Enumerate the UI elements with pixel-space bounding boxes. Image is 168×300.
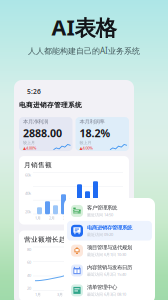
staticText: 最近访问 6月2日 15:40 bbox=[87, 272, 126, 277]
staticText: 5月 bbox=[79, 292, 85, 297]
staticText: 20k bbox=[25, 209, 31, 214]
staticText: 电商进销存管理系统 bbox=[87, 224, 132, 231]
staticText: 电商进销存管理系统 bbox=[19, 101, 82, 109]
staticText: 40 bbox=[27, 272, 31, 278]
button[interactable]: 客户管理系统 bbox=[67, 201, 152, 221]
staticText: 最近访问 6月1日 10:30 bbox=[87, 252, 126, 257]
staticText: 40k bbox=[25, 191, 31, 196]
staticText: 5:26 bbox=[27, 87, 41, 96]
staticText: 较上月 bbox=[79, 140, 91, 145]
staticText: 内容营销与发布日历 bbox=[87, 264, 132, 271]
staticText: 项目管理与迭代规划 bbox=[87, 244, 132, 251]
staticText: 3月 bbox=[57, 292, 63, 297]
staticText: 1月 bbox=[35, 292, 41, 297]
staticText: 人人都能构建自己的AI业务系统 bbox=[28, 45, 140, 56]
staticText: 60k bbox=[25, 172, 31, 177]
staticText: 60 bbox=[27, 260, 31, 265]
staticText: 客户管理系统 bbox=[87, 204, 117, 211]
staticText: 最近访问 14:50 bbox=[87, 212, 113, 217]
staticText: 2888.00 bbox=[23, 126, 62, 140]
button[interactable]: 清单管理中心 bbox=[67, 280, 152, 300]
staticText: 18.2% bbox=[79, 126, 110, 140]
staticText: 最近访问 6月3日 08:10 bbox=[87, 291, 126, 297]
staticText: ▲4.00% bbox=[23, 145, 36, 150]
staticText: 3月 bbox=[63, 215, 69, 220]
staticText: 月销售额 bbox=[24, 161, 52, 169]
staticText: 营业额增长趋势 bbox=[24, 235, 73, 244]
staticText: 本月利润率 bbox=[79, 119, 104, 125]
staticText: 4月 bbox=[77, 215, 83, 220]
staticText: 1月 bbox=[35, 215, 41, 220]
staticText: 2月 bbox=[49, 215, 55, 220]
button[interactable]: 内容营销与发布日历 bbox=[67, 261, 152, 280]
staticText: 清单管理中心 bbox=[87, 284, 117, 291]
staticText: 最近访问 09:20 bbox=[87, 232, 113, 237]
staticText: 80 bbox=[27, 247, 31, 252]
button[interactable]: 电商进销存管理系统 bbox=[67, 221, 152, 241]
button[interactable]: 项目管理与迭代规划 bbox=[67, 241, 152, 261]
staticText: ▲4.00% bbox=[79, 145, 92, 150]
staticText: 本月净利润 bbox=[23, 119, 48, 125]
staticText: AI表格 bbox=[51, 13, 116, 41]
staticText: 较上月 bbox=[23, 140, 35, 145]
staticText: 20 bbox=[27, 285, 31, 291]
